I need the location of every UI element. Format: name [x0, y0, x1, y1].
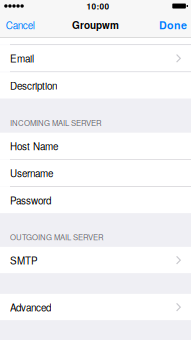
button[interactable]: Done [159, 12, 191, 38]
staticText: 10:00 [87, 0, 110, 12]
staticText: Groupwm [72, 18, 119, 32]
staticText: INCOMING MAIL SERVER [10, 117, 102, 128]
staticText: OUTGOING MAIL SERVER [10, 231, 104, 242]
button[interactable]: Host Name [0, 133, 191, 159]
button[interactable]: Advanced [0, 294, 191, 320]
staticText: Advanced [10, 300, 51, 314]
staticText: Host Name [10, 139, 58, 153]
staticText: Email [10, 51, 34, 65]
button[interactable]: Description [0, 72, 191, 99]
staticText: SMTP [10, 253, 38, 267]
button[interactable]: SMTP [0, 247, 191, 273]
staticText: Password [10, 193, 51, 207]
staticText: Cancel [6, 18, 35, 32]
staticText: Username [10, 166, 53, 180]
staticText: Done [159, 17, 187, 33]
button[interactable]: Cancel [0, 12, 35, 38]
staticText: Description [10, 78, 57, 92]
button[interactable]: Password [0, 187, 191, 213]
button[interactable]: Username [0, 160, 191, 186]
button[interactable]: Email [0, 45, 191, 72]
